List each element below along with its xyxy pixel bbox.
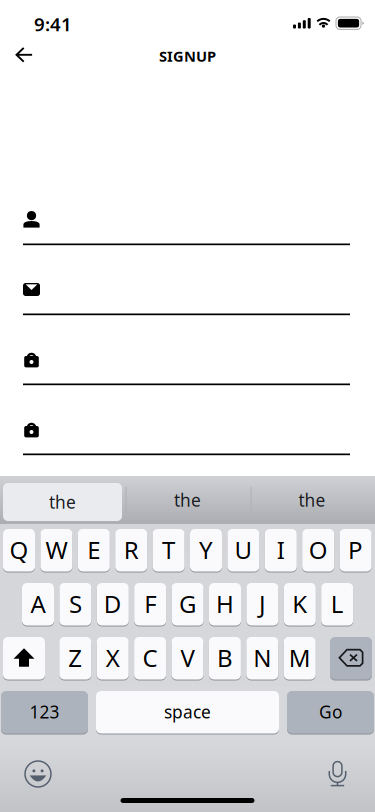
- button[interactable]: the: [250, 476, 374, 524]
- staticText: H: [216, 588, 234, 620]
- button[interactable]: Y: [190, 528, 222, 572]
- staticText: Q: [9, 534, 28, 566]
- staticText: R: [124, 534, 139, 566]
- button[interactable]: L: [321, 582, 353, 626]
- button[interactable]: the: [3, 476, 122, 524]
- staticText: 9:41: [34, 12, 72, 36]
- staticText: M: [289, 642, 311, 674]
- staticText: W: [45, 534, 67, 566]
- staticText: C: [143, 642, 158, 674]
- staticText: E: [87, 534, 100, 566]
- staticText: F: [144, 588, 156, 620]
- button[interactable]: V: [171, 636, 203, 680]
- staticText: A: [30, 588, 45, 620]
- staticText: I: [277, 534, 285, 566]
- button[interactable]: M: [284, 636, 316, 680]
- button[interactable]: J: [246, 582, 278, 626]
- button[interactable]: X: [97, 636, 129, 680]
- staticText: the: [174, 488, 201, 511]
- staticText: space: [164, 700, 211, 723]
- staticText: V: [180, 642, 194, 674]
- button[interactable]: U: [227, 528, 259, 572]
- button[interactable]: R: [115, 528, 147, 572]
- button[interactable]: I: [265, 528, 297, 572]
- staticText: B: [217, 642, 233, 674]
- staticText: Y: [199, 534, 213, 566]
- staticText: S: [69, 588, 82, 620]
- button[interactable]: Go: [287, 690, 374, 734]
- button[interactable]: G: [172, 582, 204, 626]
- button[interactable]: Delete: [330, 636, 372, 680]
- button[interactable]: Q: [3, 528, 35, 572]
- staticText: the: [298, 488, 325, 511]
- staticText: U: [234, 534, 252, 566]
- button[interactable]: Z: [59, 636, 91, 680]
- button[interactable]: B: [209, 636, 241, 680]
- button[interactable]: Shift: [3, 636, 45, 680]
- staticText: O: [309, 534, 328, 566]
- button[interactable]: K: [284, 582, 316, 626]
- button[interactable]: Back: [2, 33, 46, 77]
- button[interactable]: C: [134, 636, 166, 680]
- staticText: D: [104, 588, 122, 620]
- button[interactable]: H: [209, 582, 241, 626]
- staticText: N: [253, 642, 271, 674]
- staticText: 123: [29, 700, 59, 723]
- button[interactable]: 123: [1, 690, 88, 734]
- button[interactable]: A: [22, 582, 54, 626]
- staticText: X: [106, 642, 120, 674]
- button[interactable]: P: [340, 528, 372, 572]
- staticText: Z: [68, 642, 82, 674]
- staticText: G: [179, 588, 196, 620]
- button[interactable]: D: [97, 582, 129, 626]
- staticText: K: [292, 588, 307, 620]
- button[interactable]: Dictation: [315, 752, 359, 796]
- staticText: SIGNUP: [159, 46, 216, 66]
- staticText: Go: [319, 700, 342, 723]
- staticText: L: [331, 588, 344, 620]
- staticText: P: [348, 534, 363, 566]
- button[interactable]: Emoji keyboard: [16, 752, 60, 796]
- button[interactable]: O: [302, 528, 334, 572]
- button[interactable]: N: [246, 636, 278, 680]
- button[interactable]: E: [78, 528, 110, 572]
- button[interactable]: T: [153, 528, 185, 572]
- button[interactable]: the: [125, 476, 250, 524]
- staticText: T: [162, 534, 175, 566]
- button[interactable]: F: [134, 582, 166, 626]
- staticText: J: [259, 588, 266, 620]
- button[interactable]: space: [96, 690, 279, 734]
- button[interactable]: S: [59, 582, 91, 626]
- button[interactable]: W: [40, 528, 72, 572]
- staticText: the: [49, 490, 76, 513]
